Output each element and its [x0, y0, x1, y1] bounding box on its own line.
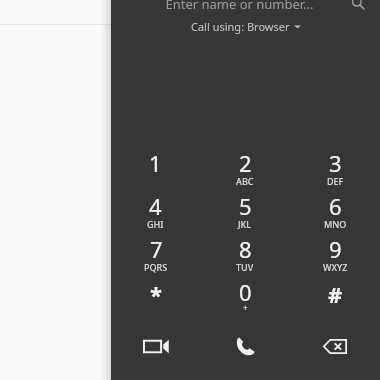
- button[interactable]: #: [290, 277, 380, 320]
- button[interactable]: Search: [350, 0, 366, 11]
- button[interactable]: 0: [200, 277, 290, 320]
- staticText: #: [328, 279, 343, 309]
- button[interactable]: 3: [290, 148, 380, 191]
- button[interactable]: 4: [111, 191, 200, 234]
- staticText: 1: [149, 148, 162, 178]
- button[interactable]: Enter name or number...: [111, 0, 380, 16]
- button[interactable]: 8: [200, 234, 290, 277]
- staticText: *: [150, 279, 162, 309]
- staticText: JKL: [238, 218, 252, 230]
- button[interactable]: Call: [200, 320, 290, 372]
- staticText: PQRS: [144, 261, 168, 273]
- staticText: 9: [329, 234, 342, 264]
- staticText: 6: [329, 191, 342, 221]
- staticText: GHI: [147, 218, 164, 230]
- button[interactable]: 6: [290, 191, 380, 234]
- button[interactable]: 2: [200, 148, 290, 191]
- staticText: Call using: Browser: [191, 19, 290, 34]
- staticText: 4: [149, 191, 162, 221]
- button[interactable]: Call using: Browser: [183, 17, 309, 36]
- staticText: WXYZ: [323, 261, 348, 273]
- button[interactable]: 9: [290, 234, 380, 277]
- staticText: ABC: [236, 175, 254, 187]
- staticText: Enter name or number...: [129, 0, 350, 11]
- staticText: 7: [150, 234, 163, 264]
- staticText: 2: [239, 148, 252, 178]
- staticText: 8: [239, 234, 252, 264]
- staticText: +: [243, 302, 248, 313]
- button[interactable]: 5: [200, 191, 290, 234]
- button[interactable]: *: [111, 277, 200, 320]
- staticText: 0: [239, 277, 252, 307]
- staticText: MNO: [324, 218, 347, 230]
- button[interactable]: Backspace: [290, 320, 380, 372]
- staticText: 3: [329, 148, 342, 178]
- staticText: 5: [239, 191, 252, 221]
- button[interactable]: 1: [111, 148, 200, 191]
- staticText: TUV: [236, 261, 254, 273]
- button[interactable]: 7: [111, 234, 200, 277]
- staticText: DEF: [327, 175, 344, 187]
- button[interactable]: Video call: [111, 320, 200, 372]
